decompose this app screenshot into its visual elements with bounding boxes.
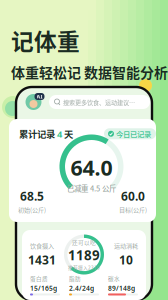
staticText: 1431: [28, 252, 56, 268]
staticText: 还可以吃: [72, 238, 96, 246]
staticText: 碳水: [108, 274, 120, 283]
staticText: 记体重: [11, 24, 80, 57]
staticText: 蛋白质: [30, 274, 48, 283]
button[interactable]: 搜索更多饮食、运动建议…: [49, 95, 150, 109]
staticText: 目标(公斤): [119, 205, 147, 214]
staticText: 68.5: [20, 188, 44, 204]
staticText: 搜索更多饮食、运动建议…: [63, 98, 135, 106]
staticText: 60.0: [121, 188, 145, 204]
staticText: 15/165g: [30, 284, 57, 292]
staticText: 推荐摄入2310: [68, 264, 100, 271]
staticText: 天: [62, 127, 73, 140]
staticText: 1189: [68, 246, 100, 264]
button[interactable]: Profile: [24, 94, 43, 110]
staticText: 今日已记录: [116, 128, 151, 139]
staticText: AI: [36, 93, 42, 100]
staticText: 89/148g: [108, 284, 135, 292]
staticText: 64.0: [70, 153, 112, 182]
staticText: 体重轻松记 数据智能分析: [11, 62, 168, 82]
staticText: 2.4/24g: [69, 284, 94, 292]
staticText: 初始(公斤): [18, 205, 46, 214]
staticText: 脂肪: [69, 274, 81, 283]
staticText: 饮食摄入: [30, 241, 54, 250]
staticText: 累计记录: [19, 127, 57, 140]
staticText: 已减重 4.5 公斤: [67, 183, 116, 194]
staticText: 运动消耗: [114, 241, 138, 250]
staticText: 10: [119, 252, 133, 268]
staticText: 4: [57, 128, 62, 140]
